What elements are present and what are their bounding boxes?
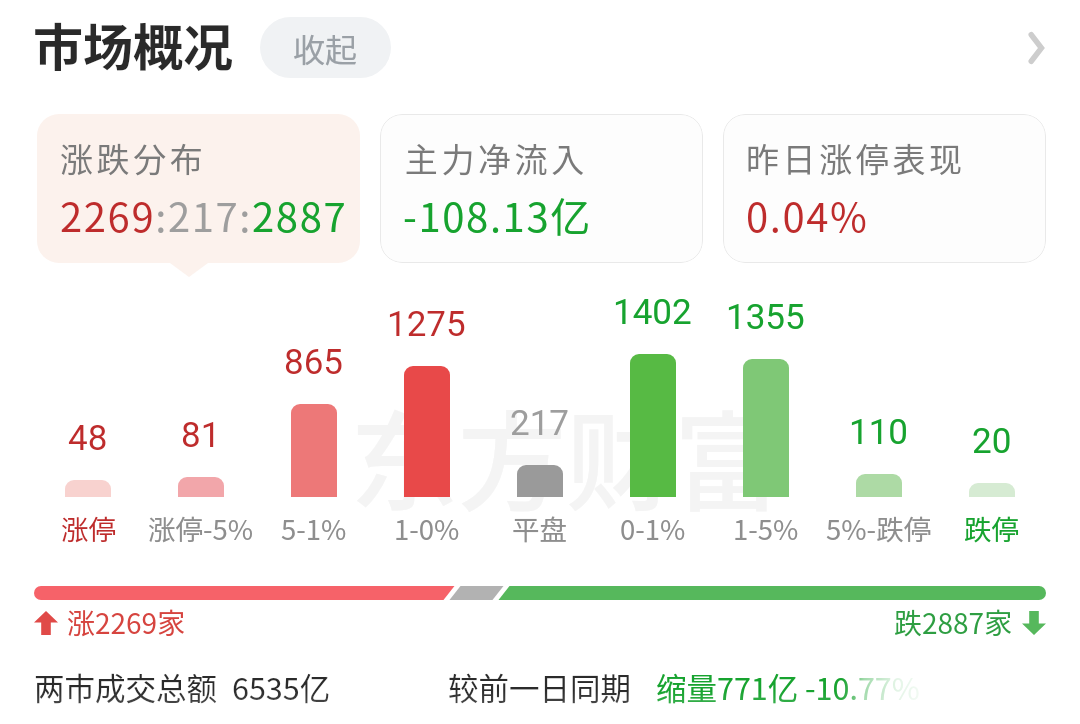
staticText: 昨日涨停表现: [746, 134, 966, 182]
staticText: 涨跌分布: [60, 134, 207, 182]
staticText: 较前一日同期: [448, 665, 631, 709]
staticText: 涨2269家: [67, 602, 186, 643]
button[interactable]: 涨跌分布: [37, 114, 360, 263]
staticText: 217: [510, 403, 570, 441]
staticText: 涨停: [61, 508, 116, 548]
staticText: 0-1%: [620, 508, 686, 548]
button[interactable]: 展开详情: [1008, 20, 1064, 76]
staticText: 110: [849, 412, 909, 450]
staticText: 缩量771亿: [656, 665, 799, 709]
staticText: 81: [181, 415, 221, 453]
staticText: 涨停-5%: [148, 508, 254, 548]
staticText: 865: [284, 342, 344, 380]
staticText: 市场概况: [33, 8, 233, 80]
staticText: 跌停: [964, 508, 1019, 548]
staticText: 两市成交总额: [34, 665, 217, 709]
staticText: 跌2887家: [894, 602, 1013, 643]
staticText: 1402: [613, 292, 692, 330]
staticText: 48: [68, 418, 108, 456]
staticText: 1-5%: [733, 508, 799, 548]
staticText: 收起: [293, 25, 358, 71]
staticText: -108.13亿: [403, 186, 592, 244]
staticText: 6535亿: [232, 665, 331, 709]
staticText: 5%-跌停: [826, 508, 932, 548]
button[interactable]: 昨日涨停表现: [723, 114, 1046, 263]
staticText: 5-1%: [281, 508, 347, 548]
staticText: 2269:217:2887: [60, 186, 348, 244]
staticText: 1275: [387, 304, 466, 342]
staticText: 1-0%: [394, 508, 460, 548]
staticText: 平盘: [512, 508, 567, 548]
staticText: 1355: [726, 297, 805, 335]
staticText: 主力净流入: [403, 134, 586, 182]
button[interactable]: 主力净流入: [380, 114, 703, 263]
staticText: 0.04%: [746, 186, 869, 244]
staticText: -10.77%: [805, 665, 920, 709]
staticText: 20: [972, 421, 1012, 459]
staticText: 东方财富: [350, 377, 783, 533]
button[interactable]: 收起: [260, 17, 391, 78]
